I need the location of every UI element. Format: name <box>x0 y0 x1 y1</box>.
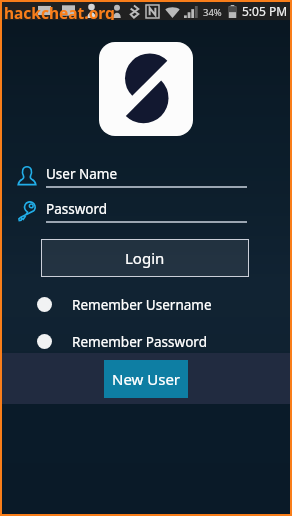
button[interactable]: Remember Username <box>37 294 222 315</box>
staticText: 34% <box>203 6 222 19</box>
staticText: 5:05 PM <box>242 3 288 19</box>
staticText: Password <box>46 200 108 218</box>
button[interactable]: Remember Password <box>37 331 222 352</box>
staticText: Remember Password <box>72 333 207 351</box>
staticText: User Name <box>46 165 118 183</box>
staticText: hackcheat.org <box>4 2 115 20</box>
staticText: Remember Username <box>72 296 212 314</box>
button[interactable]: New User <box>104 360 188 398</box>
staticText: New User <box>112 369 181 389</box>
button[interactable]: Login <box>41 239 249 277</box>
staticText: Login <box>125 248 165 268</box>
